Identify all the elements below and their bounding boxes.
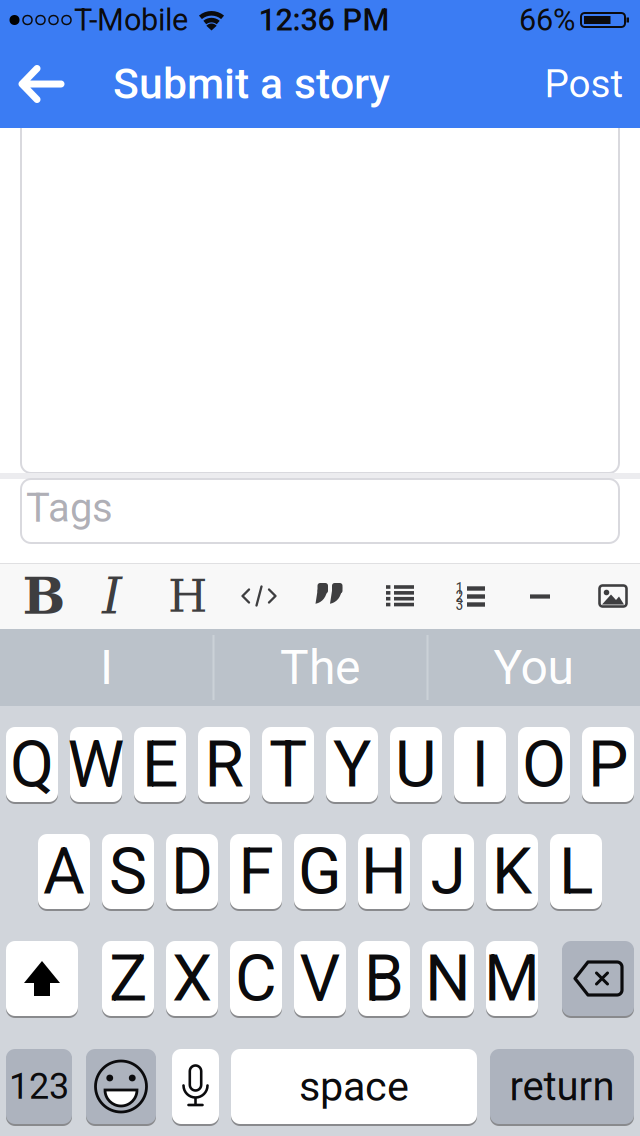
staticText: W (67, 727, 124, 802)
staticText: C (235, 941, 277, 1016)
staticText: P (588, 727, 628, 802)
button[interactable]: Emoji (86, 1049, 156, 1126)
button[interactable]: Tags (21, 479, 619, 543)
staticText: I (102, 566, 122, 625)
button[interactable]: Bulleted list (372, 568, 428, 624)
staticText: L (559, 834, 593, 909)
button[interactable]: Dictate (172, 1049, 219, 1126)
button[interactable]: Q (6, 727, 58, 804)
staticText: H (361, 834, 407, 909)
button[interactable]: S (102, 834, 154, 911)
staticText: Y (333, 727, 371, 802)
button[interactable]: K (486, 834, 538, 911)
button[interactable]: U (390, 727, 442, 804)
staticText: return (509, 1063, 614, 1110)
staticText: F (238, 834, 273, 909)
staticText: Z (109, 941, 147, 1016)
button[interactable]: V (294, 941, 346, 1018)
button[interactable]: Quote (304, 568, 360, 624)
button[interactable]: F (230, 834, 282, 911)
staticText: 3 (455, 595, 463, 614)
staticText: M (484, 941, 540, 1016)
staticText: K (492, 834, 532, 909)
button[interactable]: W (70, 727, 122, 804)
button[interactable]: A (38, 834, 90, 911)
button[interactable]: J (422, 834, 474, 911)
staticText: E (142, 727, 178, 802)
button[interactable]: Numbered list (442, 568, 498, 624)
staticText: B (22, 566, 65, 626)
button[interactable]: Story text (21, 110, 619, 473)
button[interactable]: O (518, 727, 570, 804)
staticText: You (493, 639, 573, 696)
button[interactable]: M (486, 941, 538, 1018)
button[interactable]: B (358, 941, 410, 1018)
button[interactable]: L (550, 834, 602, 911)
button[interactable]: Y (326, 727, 378, 804)
button[interactable]: You (431, 631, 636, 703)
staticText: Tags (26, 485, 113, 531)
staticText: Post (544, 61, 623, 107)
button[interactable]: space (231, 1049, 477, 1126)
button[interactable]: D (166, 834, 218, 911)
button[interactable]: Insert image (585, 568, 640, 624)
button[interactable]: Italic (84, 568, 140, 624)
button[interactable]: return (490, 1049, 634, 1126)
staticText: Submit a story (113, 59, 390, 109)
staticText: 12:36 PM (258, 2, 389, 38)
staticText: 1 (455, 579, 463, 598)
button[interactable]: I (4, 631, 209, 703)
staticText: H (168, 570, 208, 622)
staticText: 123 (9, 1065, 69, 1108)
button[interactable]: P (582, 727, 634, 804)
staticText: Q (10, 727, 54, 802)
button[interactable]: H (358, 834, 410, 911)
staticText: T-Mobile (74, 2, 188, 38)
button[interactable]: Divider (512, 568, 568, 624)
button[interactable]: E (134, 727, 186, 804)
button[interactable]: Numbers (6, 1049, 72, 1126)
button[interactable]: Z (102, 941, 154, 1018)
button[interactable]: Code (231, 568, 287, 624)
staticText: R (204, 727, 243, 802)
button[interactable]: T (262, 727, 314, 804)
staticText: space (299, 1062, 409, 1111)
button[interactable]: Back (18, 64, 64, 104)
staticText: O (522, 727, 566, 802)
button[interactable]: Delete (562, 941, 634, 1018)
staticText: 2 (455, 587, 463, 606)
button[interactable]: R (198, 727, 250, 804)
staticText: The (280, 639, 360, 696)
staticText: A (43, 834, 85, 909)
staticText: I (471, 727, 488, 802)
staticText: U (395, 727, 437, 802)
button[interactable]: The (217, 631, 422, 703)
button[interactable]: Bold (16, 568, 72, 624)
button[interactable]: Post (539, 54, 629, 114)
button[interactable]: N (422, 941, 474, 1018)
staticText: X (172, 941, 212, 1016)
staticText: V (299, 941, 340, 1016)
staticText: 66% (519, 2, 575, 38)
button[interactable]: G (294, 834, 346, 911)
staticText: J (430, 834, 465, 909)
button[interactable]: Heading (160, 568, 216, 624)
staticText: T (269, 727, 307, 802)
button[interactable]: Shift (6, 941, 78, 1018)
staticText: N (425, 941, 471, 1016)
staticText: S (109, 834, 147, 909)
button[interactable]: I (454, 727, 506, 804)
staticText: B (364, 941, 404, 1016)
staticText: D (171, 834, 213, 909)
button[interactable]: C (230, 941, 282, 1018)
button[interactable]: X (166, 941, 218, 1018)
staticText: G (298, 834, 342, 909)
staticText: I (100, 639, 113, 696)
